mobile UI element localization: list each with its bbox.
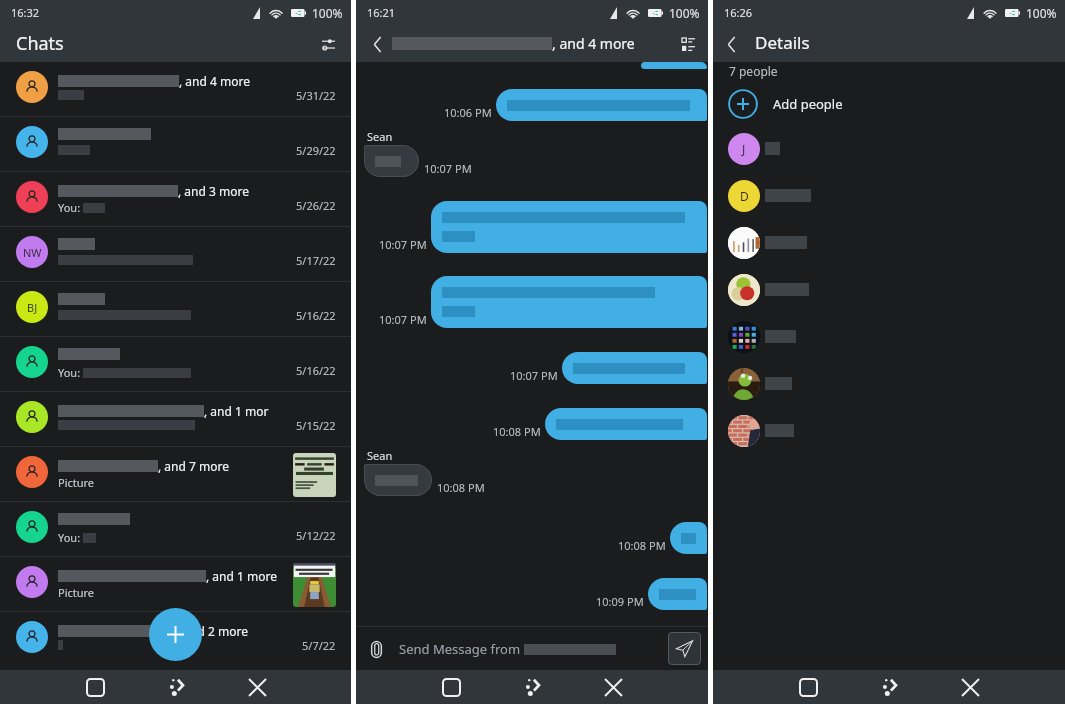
staticText: 100% <box>312 5 343 21</box>
button[interactable]: Back <box>363 30 391 58</box>
button[interactable]: Conversation details <box>674 30 702 58</box>
staticText: , and 3 more <box>178 183 249 199</box>
button[interactable]: D <box>713 172 1065 219</box>
staticText: , and 1 more <box>206 568 277 584</box>
button[interactable]: , and 1 more <box>0 557 351 612</box>
staticText: Sean <box>367 129 393 144</box>
staticText: , and 2 more <box>177 623 248 639</box>
staticText: 5/7/22 <box>302 638 336 653</box>
staticText: 5/15/22 <box>296 418 336 433</box>
staticText: 5/16/22 <box>296 308 336 323</box>
button[interactable] <box>713 219 1065 266</box>
button[interactable]: Back <box>596 670 630 704</box>
button[interactable]: Recents <box>791 670 825 704</box>
button[interactable]: Back <box>240 670 274 704</box>
button[interactable]: Attach file <box>370 639 382 659</box>
button[interactable]: , and 2 more <box>0 612 351 667</box>
staticText: NW <box>23 245 42 260</box>
button[interactable]: You: <box>0 337 351 392</box>
staticText: D <box>740 188 749 204</box>
button[interactable] <box>670 522 707 554</box>
staticText: Send Message from <box>399 640 524 658</box>
button[interactable] <box>713 360 1065 407</box>
button[interactable] <box>496 89 707 121</box>
button[interactable]: NW <box>0 227 351 282</box>
staticText: 100% <box>669 5 700 21</box>
staticText: 7 people <box>729 63 778 79</box>
staticText: Details <box>755 31 810 54</box>
staticText: 5/29/22 <box>296 143 336 158</box>
staticText: 5/12/22 <box>296 528 336 543</box>
staticText: 5/17/22 <box>296 253 336 268</box>
button[interactable]: BJ <box>0 282 351 337</box>
button[interactable] <box>431 201 707 253</box>
button[interactable]: , and 7 more <box>0 447 351 502</box>
staticText: 10:09 PM <box>596 594 644 609</box>
button[interactable]: Back <box>953 670 987 704</box>
staticText: 10:08 PM <box>493 424 541 439</box>
button[interactable]: Send <box>668 632 701 665</box>
staticText: , and 4 more <box>552 34 635 53</box>
button[interactable]: Home <box>158 670 192 704</box>
button[interactable]: Home <box>514 670 548 704</box>
button[interactable]: J <box>713 125 1065 172</box>
button[interactable]: 5/29/22 <box>0 117 351 172</box>
staticText: 10:08 PM <box>618 538 666 553</box>
button[interactable] <box>364 464 432 496</box>
staticText: BJ <box>27 300 38 315</box>
staticText: You: <box>58 200 83 215</box>
button[interactable]: , and 3 more <box>0 172 351 227</box>
button[interactable] <box>713 313 1065 360</box>
staticText: Add people <box>773 95 843 113</box>
staticText: 10:07 PM <box>379 312 427 327</box>
staticText: 10:07 PM <box>510 368 558 383</box>
button[interactable]: You: <box>0 502 351 557</box>
button[interactable] <box>713 407 1065 454</box>
staticText: 16:32 <box>11 5 40 20</box>
staticText: 5/26/22 <box>296 198 336 213</box>
staticText: You: <box>58 365 83 380</box>
button[interactable]: New chat <box>149 608 202 661</box>
staticText: , and 7 more <box>158 458 229 474</box>
button[interactable] <box>545 408 707 440</box>
button[interactable] <box>562 352 707 384</box>
staticText: 16:21 <box>367 5 396 20</box>
staticText: Picture <box>58 475 95 490</box>
button[interactable]: Filter <box>314 30 342 58</box>
staticText: You: <box>58 530 83 545</box>
staticText: 5/31/22 <box>296 88 336 103</box>
button[interactable]: , and 4 more <box>0 62 351 117</box>
staticText: , and 4 more <box>179 73 250 89</box>
button[interactable]: Add people <box>713 83 1065 124</box>
button[interactable]: Recents <box>434 670 468 704</box>
button[interactable]: Back <box>717 30 745 58</box>
staticText: 10:07 PM <box>379 237 427 252</box>
staticText: 100% <box>1026 5 1057 21</box>
button[interactable] <box>648 578 707 610</box>
staticText: 16:26 <box>724 5 753 20</box>
button[interactable]: Recents <box>78 670 112 704</box>
staticText: Picture <box>58 585 95 600</box>
button[interactable] <box>713 266 1065 313</box>
button[interactable]: , and 1 mor <box>0 392 351 447</box>
button[interactable]: Home <box>871 670 905 704</box>
button[interactable] <box>364 145 419 177</box>
button[interactable] <box>431 276 707 328</box>
staticText: 10:06 PM <box>444 105 492 120</box>
staticText: Chats <box>16 31 64 56</box>
staticText: Sean <box>367 448 393 463</box>
staticText: 10:07 PM <box>424 161 472 176</box>
staticText: 5/16/22 <box>296 363 336 378</box>
staticText: 10:08 PM <box>437 480 485 495</box>
staticText: , and 1 mor <box>204 403 269 419</box>
button[interactable] <box>641 62 707 69</box>
staticText: J <box>742 141 746 157</box>
